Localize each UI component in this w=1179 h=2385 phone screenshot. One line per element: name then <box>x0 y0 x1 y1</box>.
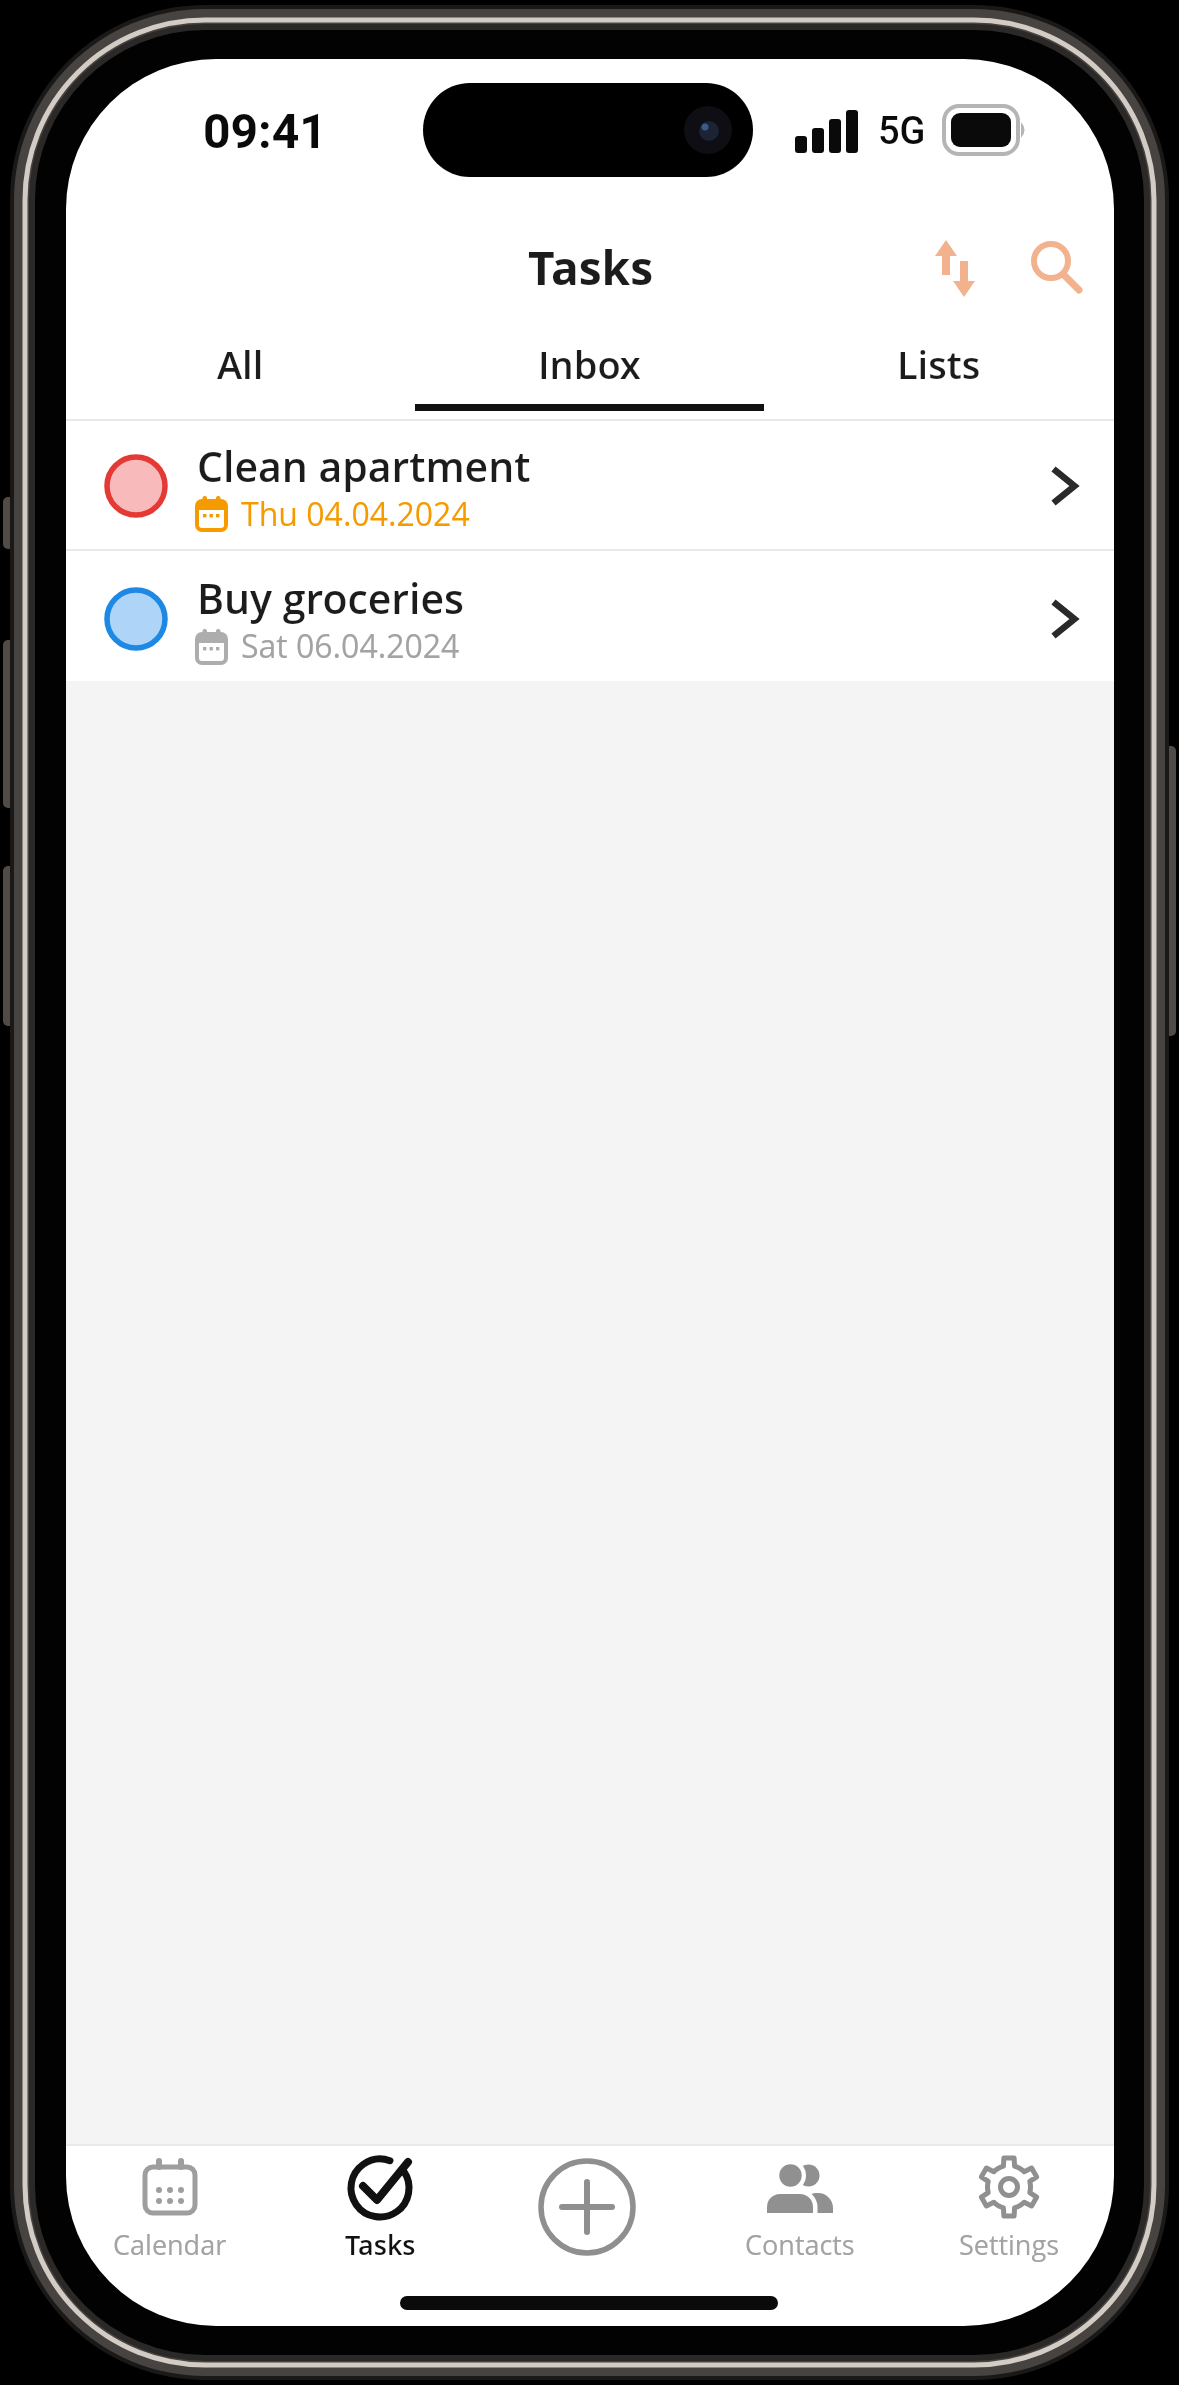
button[interactable]: Calendar <box>80 2150 260 2262</box>
staticText: Thu 04.04.2024 <box>241 492 470 536</box>
button[interactable]: Lists <box>764 320 1114 408</box>
button[interactable]: Settings <box>919 2150 1099 2262</box>
button[interactable] <box>1012 226 1098 312</box>
button[interactable]: Buy groceries <box>66 551 1114 681</box>
staticText: Lists <box>897 338 981 390</box>
staticText: All <box>217 338 264 390</box>
staticText: Calendar <box>113 2226 227 2262</box>
staticText: Tasks <box>345 2226 416 2262</box>
staticText: Inbox <box>538 338 641 390</box>
button[interactable] <box>534 2154 640 2260</box>
staticText: Buy groceries <box>197 570 465 626</box>
staticText: 09:41 <box>203 103 327 157</box>
staticText: Clean apartment <box>197 438 531 494</box>
staticText: Settings <box>959 2226 1060 2262</box>
staticText: Sat 06.04.2024 <box>241 624 460 668</box>
button[interactable] <box>910 226 1002 312</box>
button[interactable]: Contacts <box>710 2150 890 2262</box>
button[interactable]: Clean apartment <box>66 421 1114 549</box>
staticText: Contacts <box>745 2226 855 2262</box>
button[interactable]: All <box>66 320 415 408</box>
button[interactable]: Tasks <box>290 2150 470 2262</box>
staticText: Tasks <box>528 236 653 299</box>
button[interactable]: Inbox <box>415 320 764 408</box>
staticText: 5G <box>878 109 926 154</box>
